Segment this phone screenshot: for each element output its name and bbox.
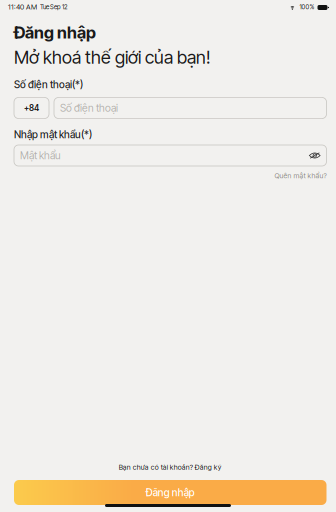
staticText: Đăng nhập xyxy=(146,486,195,499)
button[interactable]: Bạn chưa có tài khoản? Đăng ký xyxy=(14,463,326,471)
staticText: +84 xyxy=(24,103,39,113)
staticText: 100% xyxy=(299,3,314,11)
button[interactable]: Mật khẩu xyxy=(14,145,326,166)
staticText: Nhập mật khẩu(*) xyxy=(14,128,92,141)
staticText: Bạn chưa có tài khoản? Đăng ký xyxy=(119,463,222,471)
staticText: Số điện thoại(*) xyxy=(14,78,83,91)
staticText: Đăng nhập xyxy=(14,22,96,42)
staticText: Số điện thoại xyxy=(60,102,118,114)
staticText: Mở khoá thế giới của bạn! xyxy=(14,46,210,68)
button[interactable]: Đăng nhập xyxy=(14,480,326,505)
staticText: Mật khẩu xyxy=(20,149,61,162)
staticText: 11:40 AM xyxy=(8,3,37,11)
button[interactable]: +84 xyxy=(14,97,49,118)
staticText: Quên mật khẩu? xyxy=(274,171,326,180)
button[interactable]: Quên mật khẩu? xyxy=(14,171,326,180)
staticText: Tue Sep 12 xyxy=(40,3,68,11)
button[interactable]: Số điện thoại xyxy=(54,97,326,118)
